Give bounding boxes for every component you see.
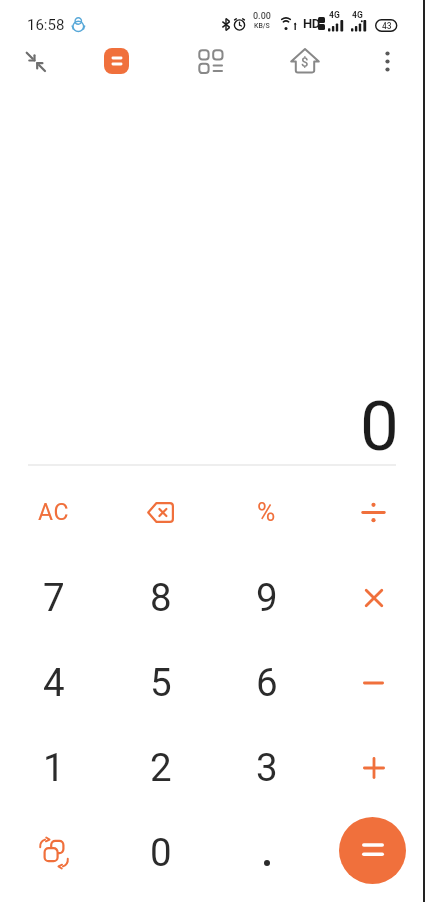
staticText: 2 [150, 745, 172, 790]
staticText: % [257, 498, 276, 527]
staticText: 0.00 [253, 11, 271, 22]
staticText: 3 [256, 745, 278, 790]
button[interactable] [213, 810, 320, 895]
staticText: AC [38, 499, 69, 526]
staticText: 0 [150, 830, 172, 875]
button[interactable]: 4 [0, 640, 107, 725]
staticText: 4 [43, 660, 65, 705]
button[interactable] [0, 810, 107, 895]
button[interactable] [196, 47, 225, 75]
button[interactable]: AC [0, 470, 107, 555]
staticText: KB/S [254, 22, 270, 30]
staticText: HD [303, 16, 320, 31]
button[interactable]: 7 [0, 555, 107, 640]
staticText: 0 [360, 386, 399, 467]
button[interactable]: 1 [0, 725, 107, 810]
button[interactable] [320, 640, 426, 725]
staticText: 4G [352, 10, 363, 20]
button[interactable]: 0 [107, 810, 214, 895]
button[interactable]: 5 [107, 640, 214, 725]
staticText: 5 [150, 660, 172, 705]
button[interactable] [104, 48, 129, 74]
button[interactable]: $ [289, 45, 321, 77]
button[interactable]: 9 [213, 555, 320, 640]
staticText: 6 [256, 660, 278, 705]
button[interactable] [320, 470, 426, 555]
staticText: 8 [150, 575, 172, 620]
button[interactable]: % [213, 470, 320, 555]
staticText: $ [301, 55, 309, 70]
staticText: 4G [329, 10, 340, 20]
staticText: 1 [43, 745, 65, 790]
staticText: 43 [382, 21, 392, 31]
button[interactable]: 8 [107, 555, 214, 640]
button[interactable] [320, 725, 426, 810]
staticText: 7 [43, 575, 65, 620]
button[interactable] [372, 46, 403, 77]
button[interactable] [320, 555, 426, 640]
button[interactable]: 2 [107, 725, 214, 810]
button[interactable] [18, 44, 54, 80]
staticText: 16:58 [27, 16, 65, 34]
button[interactable] [107, 470, 214, 555]
button[interactable] [339, 817, 406, 884]
button[interactable]: 6 [213, 640, 320, 725]
staticText: 9 [256, 575, 278, 620]
button[interactable]: 3 [213, 725, 320, 810]
